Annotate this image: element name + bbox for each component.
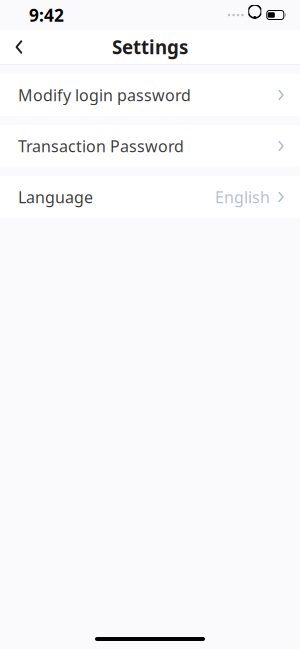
staticText: 9:42 [29,3,64,26]
button[interactable]: Language [0,176,300,218]
staticText: Settings [112,35,188,59]
button[interactable]: Back [2,30,36,64]
staticText: Transaction Password [18,135,184,157]
staticText: Modify login password [18,84,191,106]
button[interactable]: Transaction Password [0,125,300,167]
staticText: English [215,186,270,208]
staticText: Language [18,186,93,208]
button[interactable]: Modify login password [0,74,300,116]
